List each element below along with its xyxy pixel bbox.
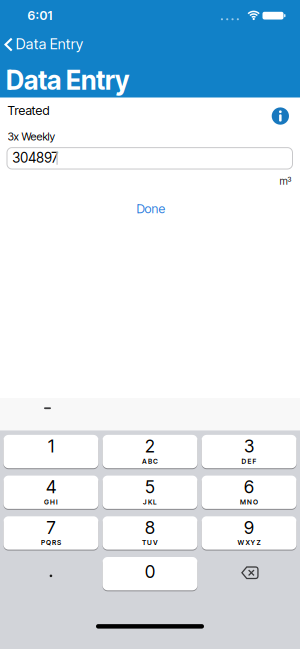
staticText: Treated	[7, 103, 49, 118]
button[interactable]: 6	[202, 476, 296, 509]
button[interactable]: Done	[136, 201, 165, 216]
staticText: A B C	[142, 457, 158, 465]
staticText: 1	[48, 436, 54, 456]
staticText: Data Entry	[6, 65, 129, 96]
staticText: 9	[244, 517, 254, 538]
button[interactable]: Amount treated	[7, 148, 292, 169]
button[interactable]: 2	[103, 435, 197, 468]
staticText: M N O	[240, 498, 258, 506]
button[interactable]: 3	[202, 435, 296, 468]
button[interactable]: 1	[3, 435, 98, 468]
button[interactable]: 8	[103, 516, 197, 550]
button[interactable]: 0	[103, 557, 197, 590]
button[interactable]: 5	[103, 476, 197, 509]
staticText: 6:01	[27, 8, 52, 23]
staticText: 4	[46, 477, 56, 497]
button[interactable]: Data Entry	[5, 36, 83, 53]
staticText: 3x Weekly	[7, 130, 55, 143]
staticText: Done	[136, 201, 165, 216]
button[interactable]: Delete	[202, 557, 296, 590]
staticText: W X Y Z	[238, 539, 261, 547]
button[interactable]: Minus	[44, 407, 51, 409]
staticText: 304897	[12, 150, 58, 166]
staticText: P Q R S	[41, 539, 61, 547]
button[interactable]: 9	[202, 516, 296, 550]
staticText: G H I	[44, 498, 58, 506]
staticText: 2	[145, 436, 155, 456]
staticText: 5	[145, 477, 155, 497]
staticText: Data Entry	[16, 35, 83, 53]
staticText: 3	[244, 436, 254, 456]
staticText: 8	[145, 517, 155, 538]
button[interactable]: Info	[272, 107, 289, 125]
staticText: 6	[244, 477, 254, 497]
button[interactable]: Decimal point	[3, 557, 98, 590]
button[interactable]: 7	[3, 516, 98, 550]
staticText: D E F	[242, 457, 257, 465]
staticText: m³	[279, 175, 291, 187]
staticText: 7	[46, 517, 55, 538]
staticText: 0	[145, 561, 155, 582]
staticText: T U V	[142, 539, 158, 547]
staticText: J K L	[143, 498, 157, 506]
button[interactable]: 4	[3, 476, 98, 509]
